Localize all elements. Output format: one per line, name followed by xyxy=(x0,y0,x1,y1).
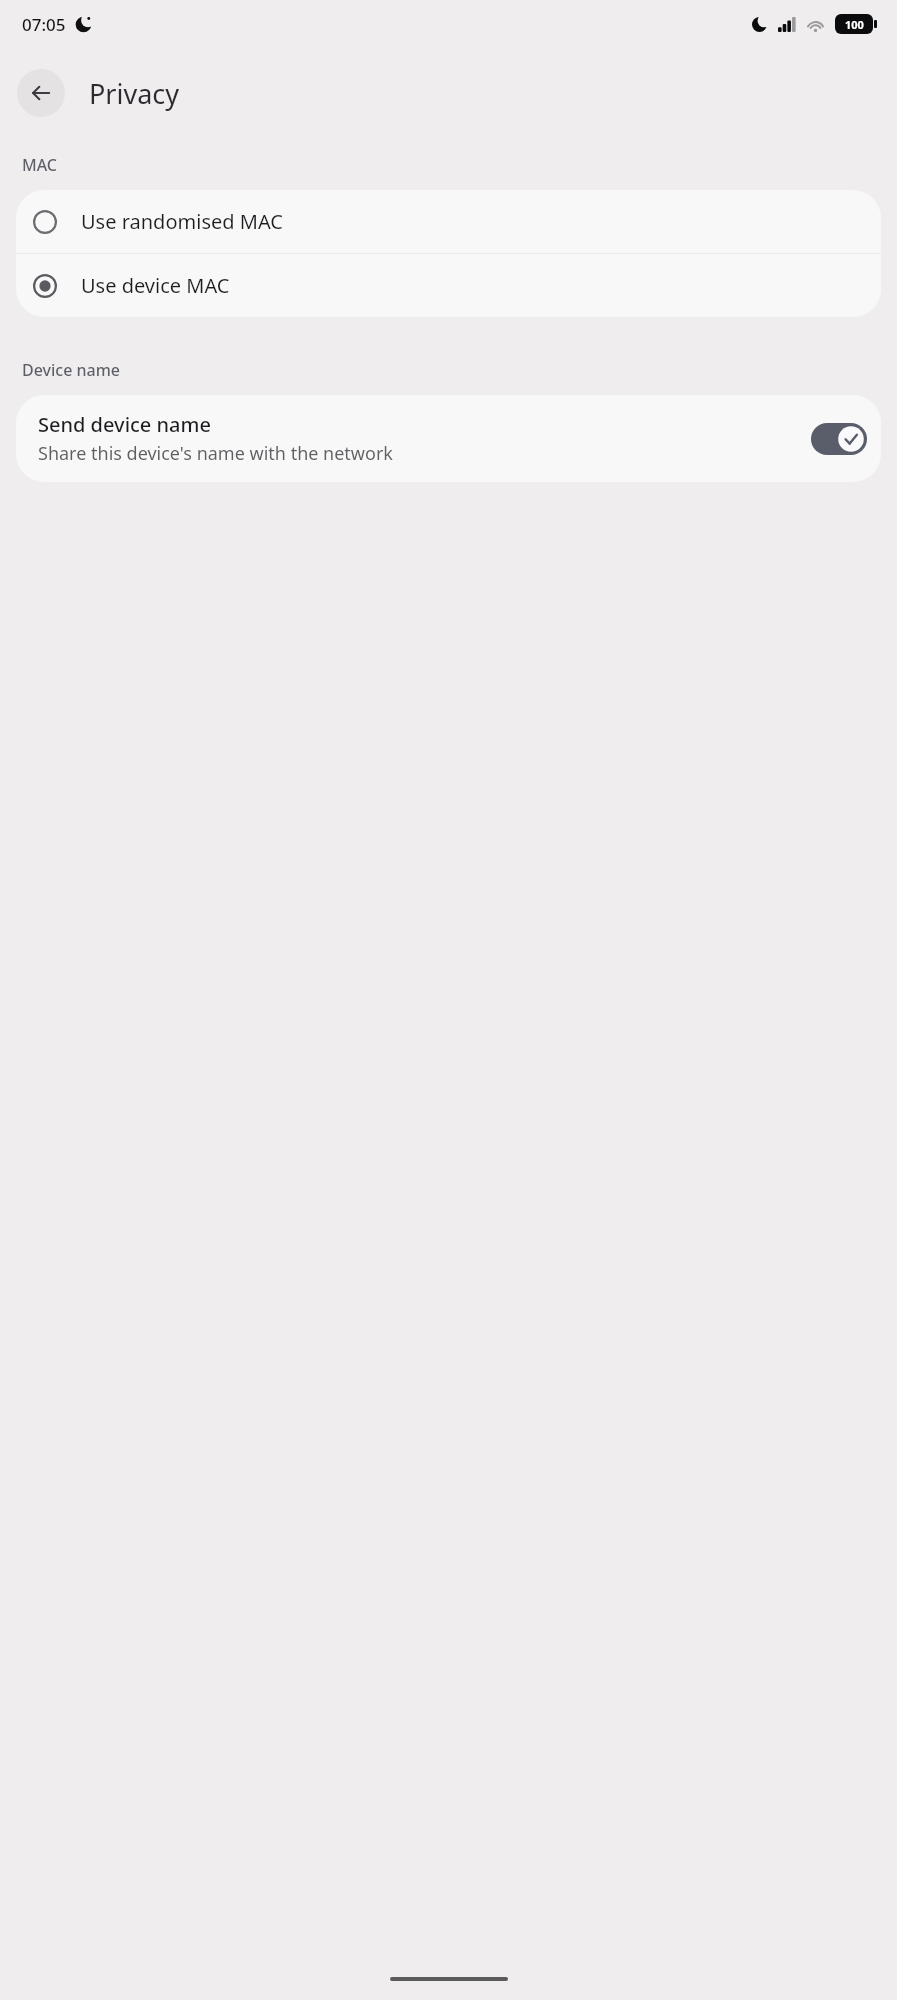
staticText: Use randomised MAC xyxy=(81,208,283,235)
staticText: Share this device's name with the networ… xyxy=(38,441,393,466)
button[interactable]: Back xyxy=(17,69,65,117)
staticText: 100 xyxy=(845,17,864,32)
staticText: Device name xyxy=(22,359,121,381)
staticText: 07:05 xyxy=(22,13,66,36)
staticText: Privacy xyxy=(89,75,180,112)
button[interactable]: Use device MAC xyxy=(16,254,881,317)
button[interactable]: Send device name toggle xyxy=(811,423,867,455)
staticText: MAC xyxy=(22,154,58,176)
button[interactable]: Send device name xyxy=(16,395,881,482)
button[interactable]: Use randomised MAC xyxy=(16,190,881,253)
staticText: Send device name xyxy=(38,411,211,438)
staticText: Use device MAC xyxy=(81,272,230,299)
